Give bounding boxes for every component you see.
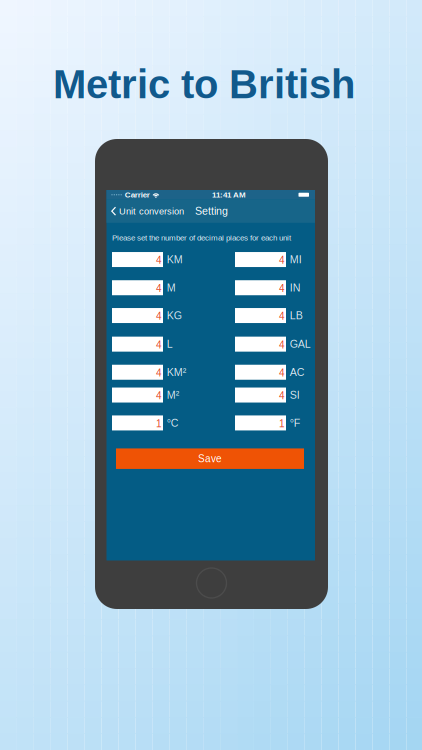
staticText: L bbox=[167, 338, 173, 350]
staticText: 4 bbox=[279, 367, 285, 379]
staticText: GAL bbox=[290, 338, 311, 350]
staticText: 4 bbox=[156, 311, 162, 322]
staticText: 4 bbox=[279, 255, 285, 266]
staticText: Save bbox=[198, 453, 222, 464]
staticText: 4 bbox=[279, 339, 285, 351]
staticText: M² bbox=[167, 389, 180, 401]
staticText: KG bbox=[167, 310, 182, 321]
staticText: 4 bbox=[156, 390, 162, 401]
staticText: 11:41 AM bbox=[212, 190, 246, 199]
button[interactable]: Unit conversion bbox=[106, 201, 188, 221]
staticText: Metric to British bbox=[53, 62, 355, 107]
staticText: °C bbox=[167, 417, 179, 429]
staticText: 1 bbox=[279, 418, 285, 429]
staticText: °F bbox=[290, 417, 301, 429]
staticText: 4 bbox=[156, 367, 162, 379]
staticText: IN bbox=[290, 282, 301, 294]
staticText: Carrier bbox=[125, 190, 150, 199]
staticText: LB bbox=[290, 310, 303, 321]
staticText: 4 bbox=[156, 283, 162, 294]
staticText: Please set the number of decimal places … bbox=[112, 233, 291, 242]
staticText: SI bbox=[290, 389, 300, 401]
staticText: Setting bbox=[195, 205, 228, 217]
button[interactable]: Save bbox=[116, 448, 304, 469]
staticText: MI bbox=[290, 254, 302, 265]
staticText: M bbox=[167, 282, 176, 294]
staticText: 4 bbox=[279, 311, 285, 322]
staticText: KM bbox=[167, 254, 183, 265]
staticText: KM² bbox=[167, 366, 187, 378]
staticText: 4 bbox=[279, 283, 285, 294]
staticText: 4 bbox=[279, 390, 285, 401]
staticText: 4 bbox=[156, 255, 162, 266]
staticText: Unit conversion bbox=[119, 206, 184, 216]
staticText: 4 bbox=[156, 339, 162, 351]
staticText: 1 bbox=[156, 418, 162, 429]
staticText: AC bbox=[290, 366, 305, 378]
